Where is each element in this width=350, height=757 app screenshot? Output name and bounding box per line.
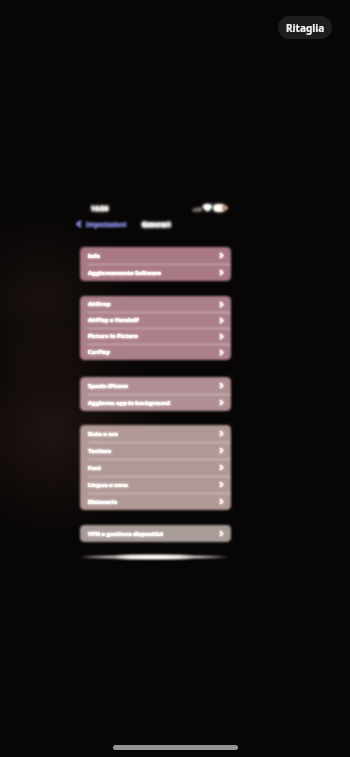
button[interactable]: AirDrop xyxy=(80,296,231,312)
button[interactable]: Info xyxy=(80,247,231,264)
button[interactable]: Aggiorna app in background xyxy=(80,394,231,411)
staticText: AirDrop xyxy=(88,300,111,308)
staticText: AirPlay e Handoff xyxy=(88,316,139,324)
staticText: Tastiera xyxy=(88,447,111,455)
button[interactable]: Lingua e zona xyxy=(80,476,231,493)
staticText: Tastiera xyxy=(88,447,111,455)
button[interactable]: Tastiera xyxy=(80,442,231,459)
staticText: AirDrop xyxy=(88,300,111,308)
button[interactable]: Dizionario xyxy=(80,493,231,510)
staticText: AirPlay e Handoff xyxy=(88,316,139,324)
staticText: Data e ora xyxy=(88,430,118,438)
button[interactable]: Picture in Picture xyxy=(80,328,231,344)
button[interactable]: AirDrop xyxy=(80,296,231,312)
staticText: Generali xyxy=(142,220,171,229)
button[interactable]: CarPlay xyxy=(80,344,231,360)
button[interactable]: Lingua e zona xyxy=(80,476,231,493)
staticText: Dizionario xyxy=(88,498,118,506)
button[interactable]: Data e ora xyxy=(80,425,231,442)
button[interactable]: AirPlay e Handoff xyxy=(80,312,231,328)
button[interactable]: Picture in Picture xyxy=(80,328,231,344)
button[interactable]: Spazio iPhone xyxy=(80,377,231,394)
button[interactable]: Impostazioni xyxy=(75,217,129,231)
staticText: Lingua e zona xyxy=(88,481,128,489)
button[interactable]: Dizionario xyxy=(80,493,231,510)
button[interactable]: Font xyxy=(80,459,231,476)
staticText: VPN e gestione dispositivi xyxy=(88,530,163,538)
button[interactable]: Data e ora xyxy=(80,425,231,442)
staticText: 14:04 xyxy=(91,204,108,213)
button[interactable]: Spazio iPhone xyxy=(80,377,231,394)
staticText: Aggiorna app in background xyxy=(88,399,171,407)
staticText: Generali xyxy=(142,220,171,229)
button[interactable]: AirPlay e Handoff xyxy=(80,312,231,328)
button[interactable]: VPN e gestione dispositivi xyxy=(80,525,231,542)
button[interactable]: Font xyxy=(80,459,231,476)
button[interactable]: Aggiornamento Software xyxy=(80,264,231,281)
staticText: 14:04 xyxy=(91,204,108,213)
staticText: Impostazioni xyxy=(86,220,127,228)
button[interactable]: Impostazioni xyxy=(75,217,129,231)
staticText: Picture in Picture xyxy=(88,332,138,340)
button[interactable]: AirDrop xyxy=(80,296,231,312)
staticText: Aggiornamento Software xyxy=(88,269,162,277)
button[interactable]: Info xyxy=(80,247,231,264)
button[interactable]: Info xyxy=(80,247,231,264)
button[interactable]: Aggiornamento Software xyxy=(80,264,231,281)
button[interactable]: Aggiorna app in background xyxy=(80,394,231,411)
button[interactable]: Tastiera xyxy=(80,442,231,459)
staticText: Spazio iPhone xyxy=(88,382,129,390)
staticText: Info xyxy=(88,252,100,260)
staticText: Picture in Picture xyxy=(88,332,138,340)
staticText: Spazio iPhone xyxy=(88,382,129,390)
button[interactable]: Aggiornamento Software xyxy=(80,264,231,281)
staticText: Data e ora xyxy=(88,430,118,438)
staticText: AirDrop xyxy=(88,300,111,308)
button[interactable]: Picture in Picture xyxy=(80,328,231,344)
staticText: Lingua e zona xyxy=(88,481,128,489)
staticText: 14:04 xyxy=(91,204,108,213)
button[interactable]: Data e ora xyxy=(80,425,231,442)
other: Home xyxy=(113,745,238,750)
staticText: Impostazioni xyxy=(86,220,127,228)
staticText: VPN e gestione dispositivi xyxy=(88,530,163,538)
button[interactable]: CarPlay xyxy=(80,344,231,360)
staticText: Info xyxy=(88,252,100,260)
button[interactable]: Lingua e zona xyxy=(80,476,231,493)
staticText: Data e ora xyxy=(88,430,118,438)
staticText: Aggiorna app in background xyxy=(88,399,171,407)
staticText: Tastiera xyxy=(88,447,111,455)
staticText: Info xyxy=(88,252,100,260)
button[interactable]: VPN e gestione dispositivi xyxy=(80,525,231,542)
button[interactable]: AirPlay e Handoff xyxy=(80,312,231,328)
staticText: CarPlay xyxy=(88,348,110,356)
staticText: CarPlay xyxy=(88,348,110,356)
staticText: Dizionario xyxy=(88,498,118,506)
staticText: Aggiorna app in background xyxy=(88,399,171,407)
staticText: Lingua e zona xyxy=(88,481,128,489)
staticText: Dizionario xyxy=(88,498,118,506)
staticText: Aggiornamento Software xyxy=(88,269,162,277)
button[interactable]: Font xyxy=(80,459,231,476)
staticText: Picture in Picture xyxy=(88,332,138,340)
button[interactable]: Dizionario xyxy=(80,493,231,510)
staticText: Generali xyxy=(142,220,171,229)
button[interactable]: Spazio iPhone xyxy=(80,377,231,394)
staticText: CarPlay xyxy=(88,348,110,356)
staticText: Font xyxy=(88,464,102,472)
button[interactable]: Ritaglia xyxy=(278,16,332,39)
staticText: Font xyxy=(88,464,102,472)
button[interactable]: VPN e gestione dispositivi xyxy=(80,525,231,542)
staticText: Aggiornamento Software xyxy=(88,269,162,277)
button[interactable]: Tastiera xyxy=(80,442,231,459)
staticText: Spazio iPhone xyxy=(88,382,129,390)
staticText: VPN e gestione dispositivi xyxy=(88,530,163,538)
staticText: Font xyxy=(88,464,102,472)
staticText: AirPlay e Handoff xyxy=(88,316,139,324)
button[interactable]: Aggiorna app in background xyxy=(80,394,231,411)
button[interactable]: CarPlay xyxy=(80,344,231,360)
staticText: Ritaglia xyxy=(286,21,325,35)
